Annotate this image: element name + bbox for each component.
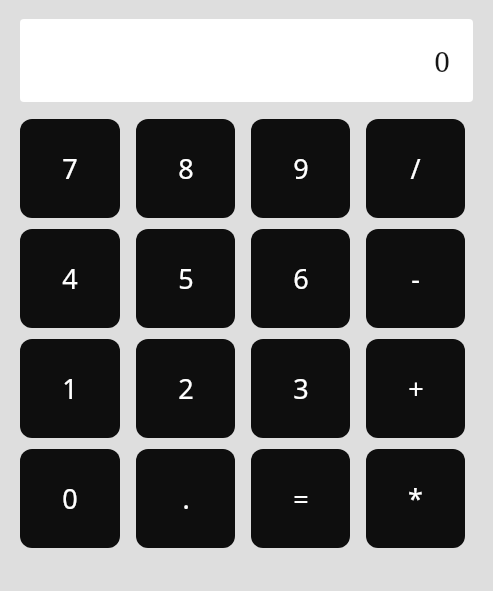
button[interactable]: =: [251, 449, 350, 548]
staticText: *: [408, 480, 423, 517]
staticText: 0: [434, 42, 450, 80]
button[interactable]: -: [366, 229, 465, 328]
staticText: 0: [62, 480, 78, 517]
staticText: 9: [293, 150, 309, 187]
button[interactable]: 1: [20, 339, 120, 438]
staticText: .: [182, 480, 190, 517]
staticText: 1: [62, 370, 78, 407]
button[interactable]: 4: [20, 229, 120, 328]
button[interactable]: 6: [251, 229, 350, 328]
button[interactable]: +: [366, 339, 465, 438]
staticText: =: [293, 480, 309, 517]
staticText: +: [408, 370, 424, 407]
button[interactable]: 9: [251, 119, 350, 218]
button[interactable]: .: [136, 449, 235, 548]
button[interactable]: 3: [251, 339, 350, 438]
staticText: 5: [178, 260, 194, 297]
staticText: 3: [293, 370, 309, 407]
staticText: 6: [293, 260, 309, 297]
button[interactable]: *: [366, 449, 465, 548]
button[interactable]: /: [366, 119, 465, 218]
staticText: 7: [62, 150, 78, 187]
button[interactable]: 0: [20, 449, 120, 548]
staticText: 2: [178, 370, 194, 407]
staticText: -: [411, 260, 420, 297]
staticText: 8: [178, 150, 194, 187]
staticText: /: [410, 150, 421, 187]
button[interactable]: 0: [20, 19, 473, 102]
staticText: 4: [62, 260, 78, 297]
button[interactable]: 5: [136, 229, 235, 328]
button[interactable]: 8: [136, 119, 235, 218]
button[interactable]: 2: [136, 339, 235, 438]
button[interactable]: 7: [20, 119, 120, 218]
